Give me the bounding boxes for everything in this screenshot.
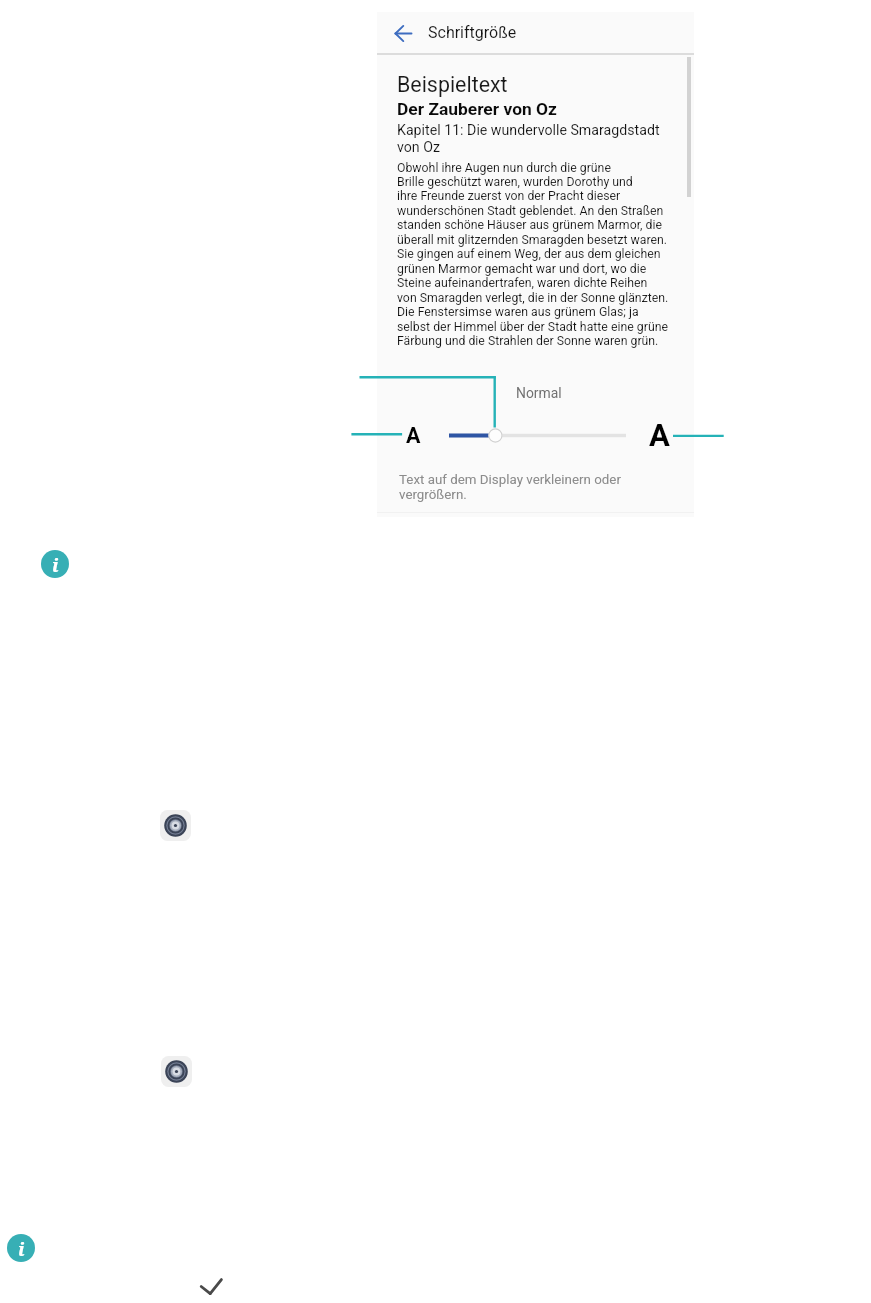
button[interactable]: Done [195, 1272, 227, 1303]
staticText: Text auf dem Display verkleinern oder [399, 472, 621, 488]
button[interactable]: Info [41, 550, 69, 578]
staticText: Färbung und die Strahlen der Sonne waren… [397, 334, 659, 348]
staticText: von Oz [397, 139, 441, 156]
staticText: von Smaragden verlegt, die in der Sonne … [397, 291, 669, 305]
staticText: i [18, 1236, 25, 1261]
staticText: Kapitel 11: Die wundervolle Smaragdstadt [397, 122, 660, 139]
staticText: standen schöne Häuser aus grünem Marmor,… [397, 218, 662, 232]
staticText: A [649, 417, 670, 453]
staticText: Sie gingen auf einem Weg, der aus dem gl… [397, 247, 661, 261]
staticText: i [52, 552, 59, 577]
button[interactable]: Font size slider [449, 425, 626, 446]
staticText: selbst der Himmel über der Stadt hatte e… [397, 320, 668, 334]
staticText: wunderschönen Stadt geblendet. An den St… [397, 204, 664, 218]
staticText: Obwohl ihre Augen nun durch die grüne [397, 161, 611, 175]
button[interactable]: Settings [161, 1056, 192, 1087]
staticText: vergrößern. [399, 487, 467, 503]
staticText: A [406, 423, 421, 448]
button[interactable]: Info [7, 1234, 35, 1262]
button[interactable]: Back [390, 20, 416, 46]
staticText: Steine aufeinandertrafen, waren dichte R… [397, 276, 648, 290]
button[interactable]: Back [377, 12, 694, 53]
staticText: Brille geschützt waren, wurden Dorothy u… [397, 175, 633, 189]
staticText: Schriftgröße [428, 23, 517, 42]
staticText: Beispieltext [397, 72, 508, 97]
button[interactable]: Settings [160, 810, 191, 841]
staticText: grünen Marmor gemacht war und dort, wo d… [397, 262, 647, 276]
staticText: Normal [516, 385, 562, 401]
staticText: Die Fenstersimse waren aus grünem Glas; … [397, 305, 639, 319]
staticText: überall mit glitzernden Smaragden besetz… [397, 233, 668, 247]
staticText: ihre Freunde zuerst von der Pracht diese… [397, 189, 621, 203]
staticText: Der Zauberer von Oz [397, 99, 557, 119]
